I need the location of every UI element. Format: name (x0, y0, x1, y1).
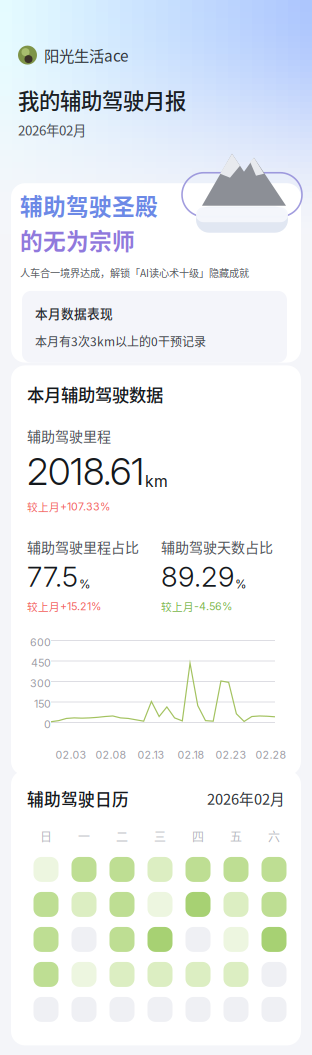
staticText: 2026年02月 (18, 120, 86, 139)
staticText: 150 (34, 697, 51, 710)
staticText: 较上月 (161, 598, 194, 614)
staticText: 0 (44, 718, 51, 731)
staticText: 辅助驾驶日历 (27, 786, 129, 810)
button[interactable]: 阳光生活ace (18, 44, 128, 66)
staticText: 02.18 (177, 748, 204, 761)
staticText: 2018.61 (27, 449, 144, 494)
staticText: 二 (116, 827, 128, 845)
staticText: % (235, 577, 247, 591)
staticText: km (145, 472, 168, 491)
staticText: 较上月 (27, 499, 60, 514)
staticText: 阳光生活ace (44, 44, 128, 66)
staticText: 较上月 (27, 598, 60, 614)
staticText: 的无为宗师 (20, 223, 135, 256)
staticText: 02.03 (55, 748, 86, 761)
staticText: 辅助驾驶里程占比 (27, 536, 139, 557)
staticText: 2026年02月 (207, 788, 285, 809)
staticText: 02.23 (215, 748, 246, 761)
staticText: 300 (30, 677, 51, 690)
staticText: 本月辅助驾驶数据 (27, 381, 163, 406)
staticText: 02.28 (255, 748, 286, 761)
staticText: +107.33% (60, 500, 110, 513)
staticText: 本月有3次3km以上的0干预记录 (35, 332, 206, 350)
staticText: 辅助驾驶天数占比 (161, 536, 273, 557)
staticText: -4.56% (194, 600, 232, 613)
staticText: 450 (31, 656, 51, 669)
staticText: +15.21% (60, 600, 101, 613)
staticText: 人车合一境界达成，解锁「AI读心术十级」隐藏成就 (20, 265, 249, 280)
staticText: 600 (30, 636, 51, 649)
staticText: 02.08 (95, 748, 126, 761)
staticText: 02.13 (137, 748, 164, 761)
staticText: 日 (40, 827, 52, 845)
staticText: 一 (78, 827, 90, 845)
staticText: % (79, 577, 91, 591)
staticText: 77.5 (27, 560, 78, 594)
staticText: 我的辅助驾驶月报 (18, 84, 186, 115)
staticText: 六 (268, 827, 280, 845)
staticText: 辅助驾驶里程 (27, 425, 111, 446)
staticText: 本月数据表现 (35, 304, 113, 322)
staticText: 辅助驾驶圣殿 (20, 189, 158, 221)
staticText: 四 (192, 827, 204, 845)
staticText: 89.29 (161, 560, 234, 594)
staticText: 三 (154, 827, 166, 845)
staticText: 五 (230, 827, 242, 845)
